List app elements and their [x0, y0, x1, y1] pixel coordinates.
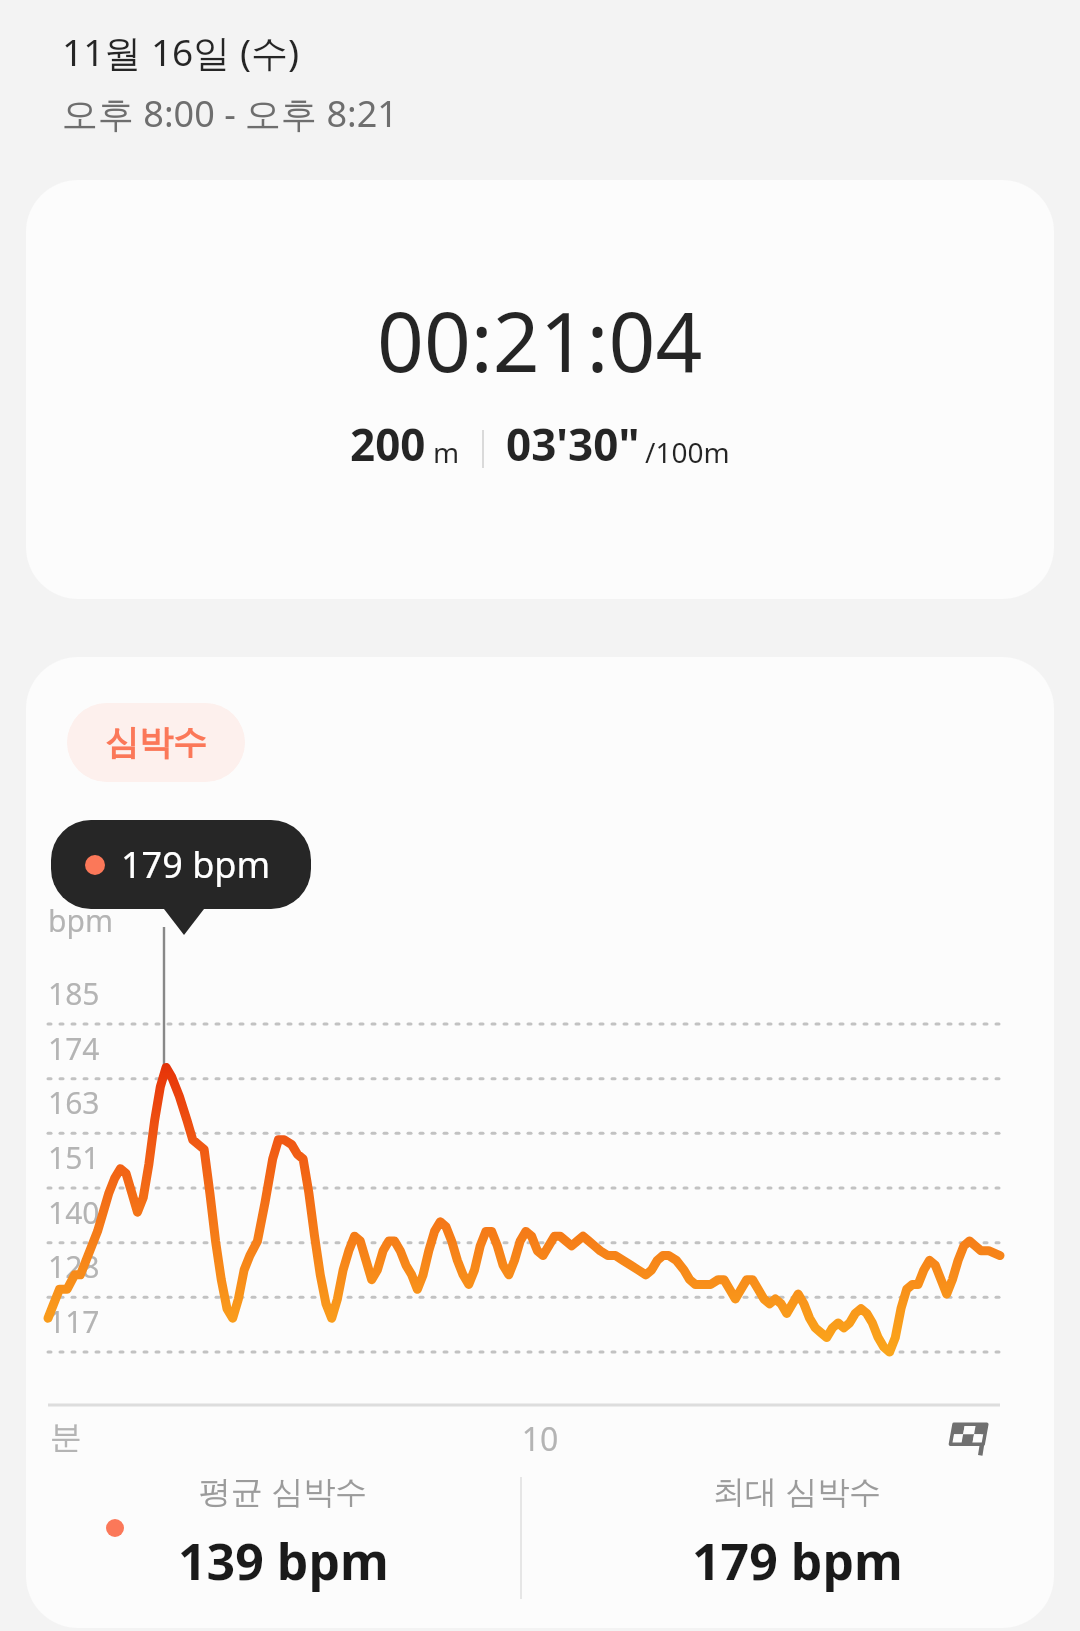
staticText: 평균 심박수 — [199, 1469, 368, 1513]
staticText: 200 — [350, 414, 426, 474]
button[interactable]: 179 bpm — [51, 820, 311, 909]
staticText: 179 bpm — [121, 840, 271, 889]
other: Finish — [954, 1417, 994, 1457]
staticText: 185 — [48, 973, 100, 1014]
staticText: 140 — [48, 1192, 100, 1233]
staticText: 최대 심박수 — [713, 1469, 882, 1513]
staticText: m — [433, 433, 460, 471]
staticText: bpm — [48, 900, 113, 941]
staticText: 오후 8:00 - 오후 8:21 — [62, 89, 398, 138]
staticText: /100m — [645, 433, 730, 471]
staticText: 분 — [50, 1417, 82, 1457]
staticText: 10 — [26, 1417, 1054, 1461]
staticText: 179 bpm — [692, 1527, 903, 1595]
staticText: 00:21:04 — [377, 284, 703, 396]
button[interactable]: 00:21:04 — [26, 180, 1054, 599]
staticText: 151 — [48, 1137, 100, 1178]
button[interactable]: 최대 심박수 — [540, 1469, 1054, 1595]
staticText: 03'30" — [506, 414, 640, 474]
button[interactable]: 평균 심박수 — [26, 1469, 540, 1595]
staticText: 117 — [48, 1301, 100, 1342]
button[interactable]: 심박수 — [67, 703, 245, 782]
staticText: 174 — [48, 1028, 100, 1069]
staticText: 심박수 — [105, 721, 207, 764]
staticText: 163 — [48, 1082, 100, 1123]
staticText: 128 — [48, 1246, 100, 1287]
staticText: 11월 16일 (수) — [62, 26, 300, 77]
staticText: 139 bpm — [178, 1527, 389, 1595]
